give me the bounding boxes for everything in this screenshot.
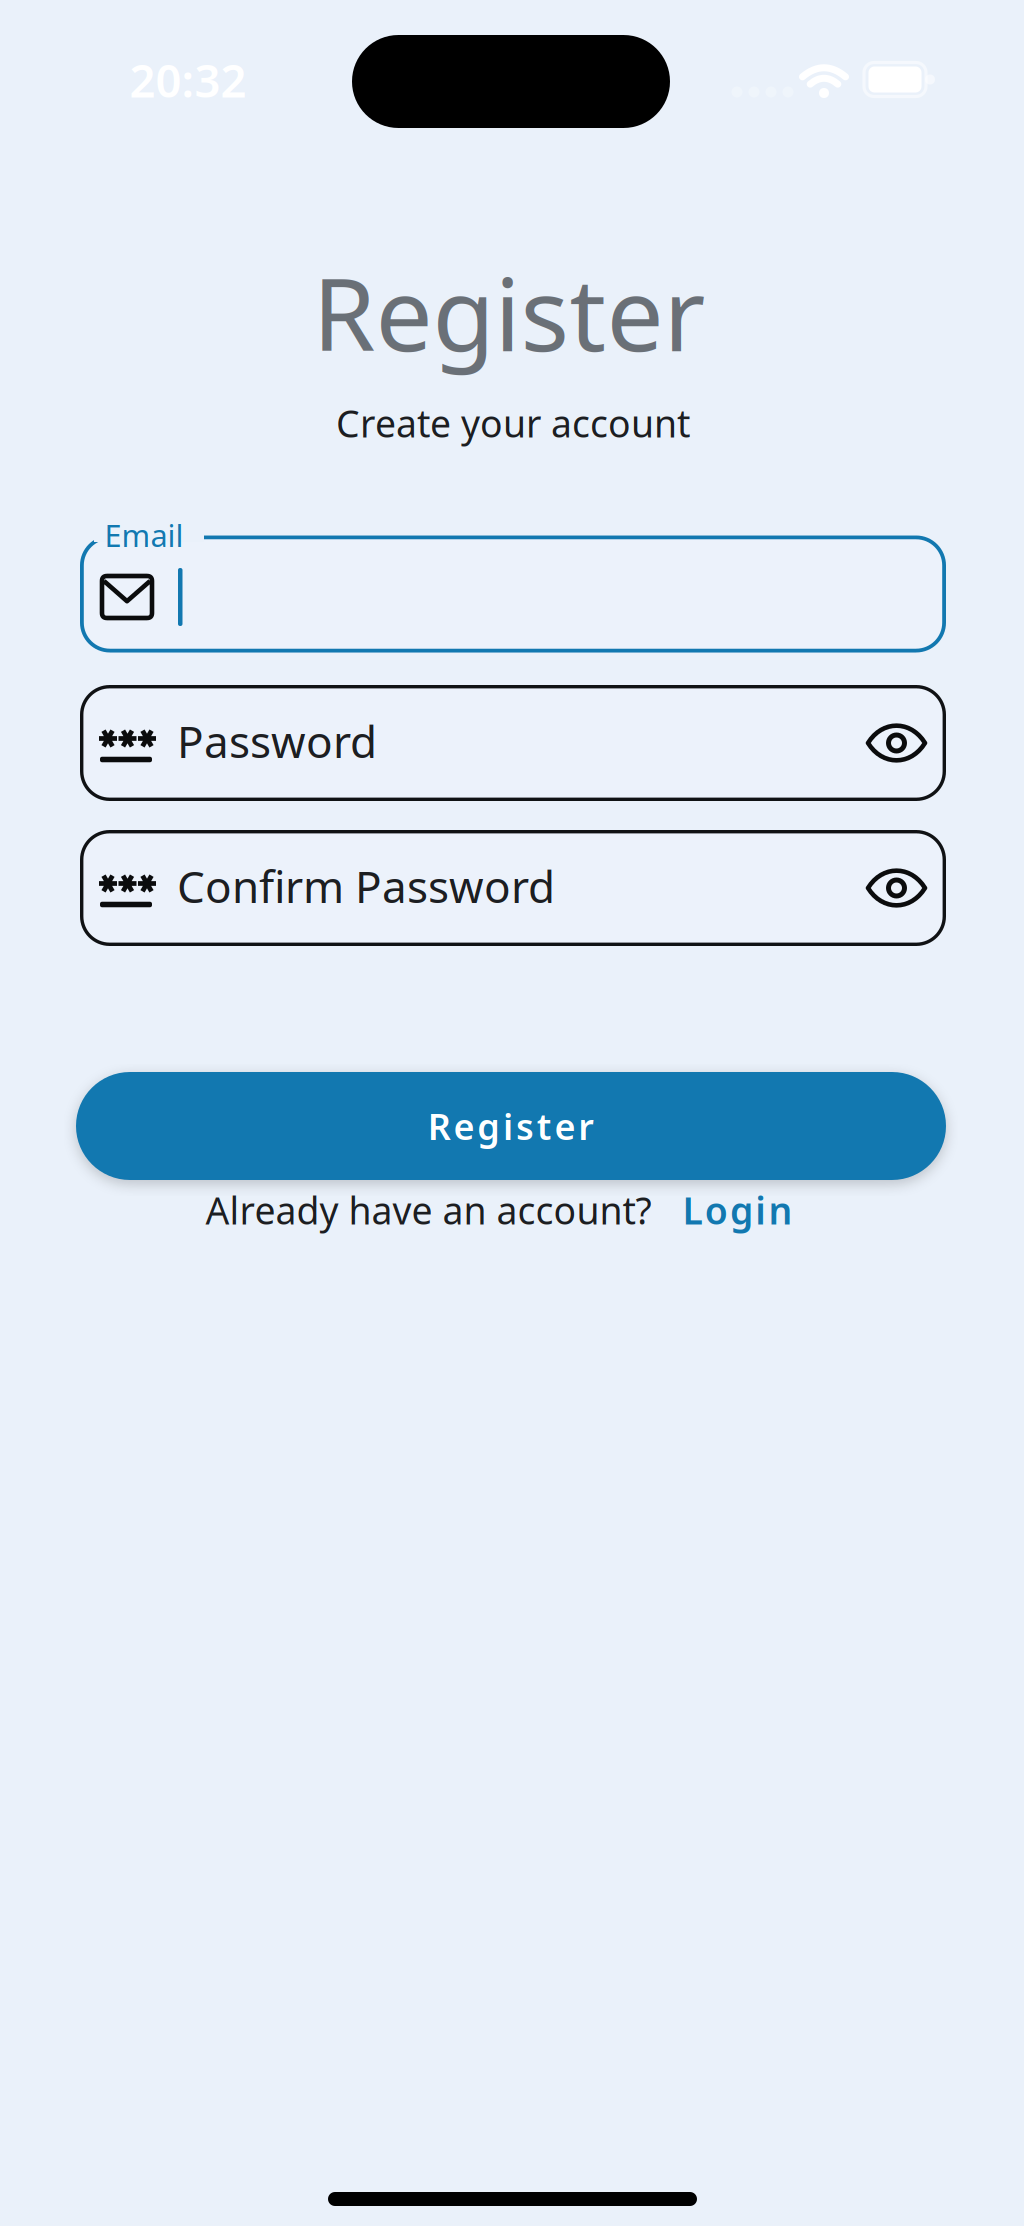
staticText: t (537, 1102, 552, 1150)
staticText: Already have an account? (206, 1185, 652, 1235)
button[interactable]: Confirm Password (80, 830, 946, 946)
button[interactable]: Password (80, 685, 946, 801)
staticText: e (453, 1102, 474, 1150)
staticText: s (516, 1102, 534, 1150)
staticText: R (428, 1102, 451, 1150)
staticText: Password (177, 712, 377, 770)
staticText: o (705, 1185, 728, 1235)
staticText: g (730, 1185, 753, 1235)
button[interactable]: R (76, 1072, 946, 1180)
staticText: r (578, 1102, 594, 1150)
staticText: Email (104, 515, 183, 555)
staticText: e (554, 1102, 575, 1150)
staticText: g (477, 1102, 500, 1150)
staticText: i (755, 1185, 766, 1235)
button[interactable]: L (683, 1185, 792, 1235)
staticText: Create your account (336, 398, 690, 448)
staticText: 20:32 (129, 50, 246, 110)
button[interactable]: Email (80, 535, 946, 652)
staticText: n (768, 1185, 792, 1235)
staticText: i (503, 1102, 513, 1150)
staticText: Register (312, 245, 705, 379)
staticText: Confirm Password (177, 857, 555, 915)
staticText: L (683, 1185, 703, 1235)
